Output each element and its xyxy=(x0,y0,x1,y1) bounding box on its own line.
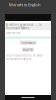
staticText: a sentence xyxy=(6,31,21,35)
staticText: TRANSLATE xyxy=(21,41,34,44)
staticText: lorem ipsum dolor sit amet consectetur a… xyxy=(6,54,43,61)
staticText: English xyxy=(23,48,33,51)
staticText: A million years since ... to Room and Ma… xyxy=(6,23,42,30)
staticText: Marathi to English xyxy=(9,2,40,7)
